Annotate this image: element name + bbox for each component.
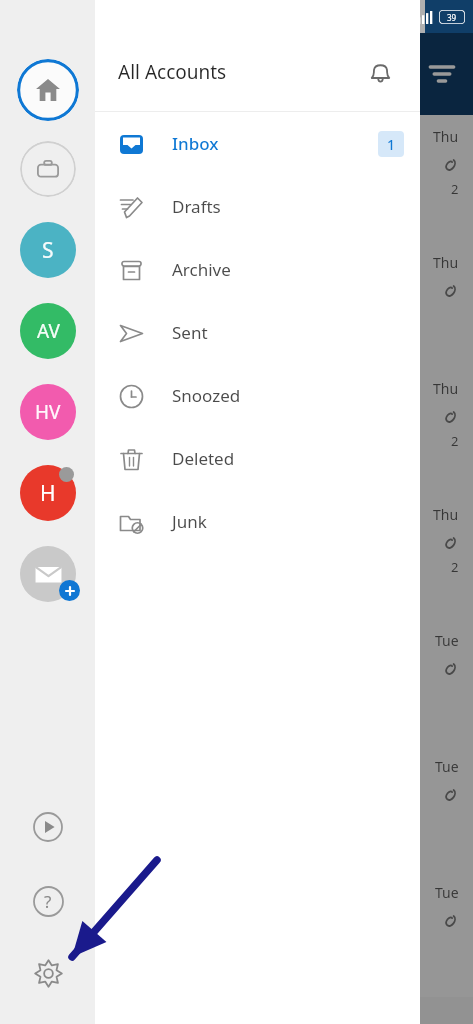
staticText: S — [42, 236, 54, 265]
staticText: ? — [44, 890, 52, 913]
button[interactable]: Deleted — [95, 427, 420, 490]
button[interactable]: Tue — [0, 745, 473, 871]
staticText: 1 — [387, 135, 396, 154]
staticText: Thu — [433, 379, 459, 398]
button[interactable]: Snoozed — [95, 364, 420, 427]
button[interactable]: Play — [25, 804, 71, 850]
staticText: 2 — [451, 180, 459, 198]
staticText: HV — [35, 399, 61, 425]
button[interactable]: Tue — [0, 619, 473, 745]
staticText: Tue — [435, 631, 459, 650]
button[interactable]: Account AV — [20, 303, 76, 359]
button[interactable]: Account H — [20, 465, 76, 521]
button[interactable]: Junk — [95, 490, 420, 553]
other: Filter — [429, 61, 455, 87]
staticText: AV — [37, 318, 60, 344]
staticText: Deleted — [172, 447, 235, 470]
button[interactable]: Help — [25, 878, 71, 924]
staticText: Drafts — [172, 195, 221, 218]
button[interactable]: Notifications — [360, 52, 400, 92]
staticText: Thu — [433, 127, 459, 146]
button[interactable]: Tue — [0, 871, 473, 997]
staticText: All Accounts — [118, 59, 227, 85]
staticText: Junk — [172, 510, 207, 533]
button[interactable]: Thu — [0, 241, 473, 367]
staticText: 39 — [447, 12, 457, 23]
button[interactable]: All Accounts — [95, 33, 420, 111]
button[interactable]: Thu — [0, 493, 473, 619]
staticText: 2 — [451, 432, 459, 450]
staticText: Thu — [433, 253, 459, 272]
staticText: H — [40, 479, 56, 508]
button[interactable]: Inbox — [95, 112, 420, 175]
button[interactable]: All accounts — [17, 59, 79, 121]
button[interactable]: Settings — [25, 950, 71, 996]
button[interactable]: Sent — [95, 301, 420, 364]
button[interactable]: Drafts — [95, 175, 420, 238]
button[interactable]: Work account — [20, 141, 76, 197]
button[interactable]: Archive — [95, 238, 420, 301]
staticText: 2 — [451, 558, 459, 576]
staticText: Archive — [172, 258, 231, 281]
staticText: Sent — [172, 321, 208, 344]
staticText: Thu — [433, 505, 459, 524]
staticText: Tue — [435, 883, 459, 902]
button[interactable]: Account S — [20, 222, 76, 278]
staticText: Snoozed — [172, 384, 241, 407]
button[interactable]: Add account — [20, 546, 76, 602]
button[interactable]: Thu — [0, 115, 473, 241]
button[interactable]: Account HV — [20, 384, 76, 440]
button[interactable]: Thu — [0, 367, 473, 493]
staticText: Tue — [435, 757, 459, 776]
staticText: Inbox — [172, 132, 219, 155]
